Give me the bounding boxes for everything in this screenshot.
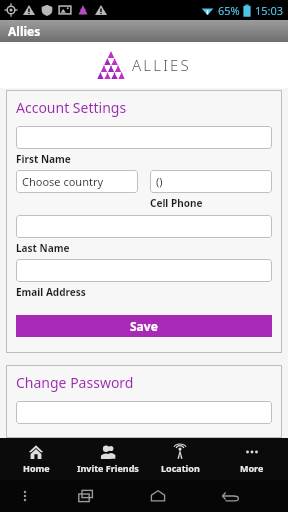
staticText: Choose country (22, 174, 104, 189)
staticText: Location (161, 462, 200, 474)
staticText: Cell Phone (150, 196, 203, 210)
button[interactable]: Back (194, 480, 266, 512)
button[interactable] (16, 126, 272, 149)
staticText: Last Name (16, 241, 70, 255)
staticText: () (156, 174, 163, 189)
button[interactable]: Choose country (16, 170, 138, 193)
button[interactable]: Invite Friends (72, 438, 144, 480)
staticText: 65% (218, 3, 240, 18)
button[interactable]: Home (0, 438, 72, 480)
button[interactable] (16, 259, 272, 282)
button[interactable] (16, 215, 272, 238)
staticText: First Name (16, 152, 71, 166)
staticText: More (240, 462, 264, 474)
staticText: Home (23, 462, 50, 474)
staticText: Change Password (16, 373, 134, 392)
button[interactable]: Location (144, 438, 216, 480)
button[interactable]: Menu (0, 480, 50, 512)
staticText: Allies (8, 23, 41, 39)
button[interactable]: Save (16, 315, 272, 337)
staticText: 15:03 (255, 3, 284, 18)
button[interactable] (16, 401, 272, 424)
staticText: ALLIES (132, 55, 191, 75)
button[interactable]: Home (122, 480, 194, 512)
button[interactable]: More (216, 438, 288, 480)
staticText: Invite Friends (77, 462, 139, 474)
button[interactable]: Recents (50, 480, 122, 512)
staticText: Account Settings (16, 98, 127, 117)
staticText: Save (130, 318, 158, 334)
staticText: Email Address (16, 285, 86, 299)
button[interactable]: () (150, 170, 272, 193)
